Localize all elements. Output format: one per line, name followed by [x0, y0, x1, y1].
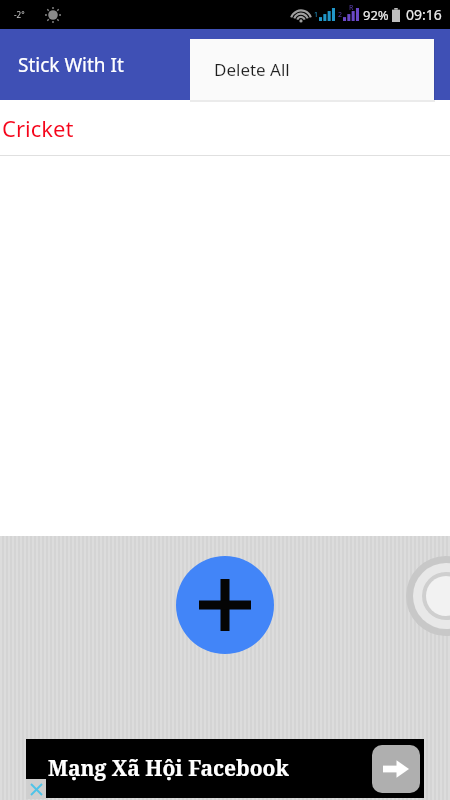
- button[interactable]: Open ad: [372, 745, 420, 793]
- button[interactable]: Delete All: [190, 39, 434, 100]
- button[interactable]: Stick With It: [18, 52, 124, 78]
- button[interactable]: Close ad: [26, 779, 46, 799]
- staticText: Mạng Xã Hội Facebook: [48, 754, 289, 783]
- button[interactable]: Add: [176, 556, 274, 654]
- staticText: 1: [314, 10, 319, 20]
- button[interactable]: Cricket: [0, 100, 450, 155]
- staticText: 92%: [363, 6, 389, 24]
- staticText: Cricket: [2, 113, 74, 143]
- staticText: R: [349, 3, 354, 13]
- button[interactable]: Mạng Xã Hội Facebook: [26, 739, 424, 798]
- staticText: 2: [338, 10, 343, 20]
- staticText: Delete All: [214, 58, 290, 81]
- staticText: -2°: [14, 9, 25, 20]
- staticText: 09:16: [406, 5, 442, 24]
